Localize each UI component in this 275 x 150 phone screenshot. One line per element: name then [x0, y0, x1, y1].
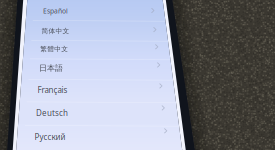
staticText: Русский [34, 132, 65, 142]
button[interactable]: 简体中文 [42, 23, 152, 38]
button[interactable]: 日本語 [39, 60, 149, 75]
staticText: Deutsch [36, 108, 68, 118]
staticText: Español [43, 7, 68, 15]
button[interactable]: Français [38, 82, 148, 97]
button[interactable]: Deutsch [36, 105, 146, 120]
staticText: 简体中文 [42, 27, 70, 35]
button[interactable]: 繁體中文 [40, 41, 150, 56]
button[interactable]: Español [43, 3, 153, 18]
staticText: 繁體中文 [40, 45, 68, 53]
staticText: 日本語 [39, 63, 63, 73]
staticText: Français [38, 85, 68, 95]
button[interactable]: Русский [34, 129, 144, 144]
